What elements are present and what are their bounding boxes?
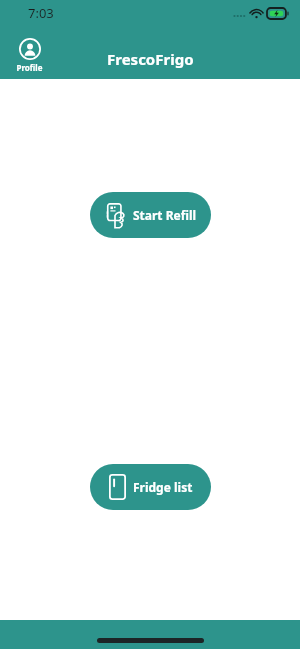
staticText: Profile: [16, 62, 43, 73]
button[interactable]: Start Refill: [90, 192, 211, 238]
staticText: Fridge list: [133, 479, 193, 495]
staticText: 7:03: [28, 4, 54, 22]
staticText: Start Refill: [133, 207, 197, 223]
staticText: FrescoFrigo: [107, 49, 194, 69]
button[interactable]: Fridge list: [90, 464, 211, 510]
button[interactable]: Profile: [13, 37, 46, 74]
